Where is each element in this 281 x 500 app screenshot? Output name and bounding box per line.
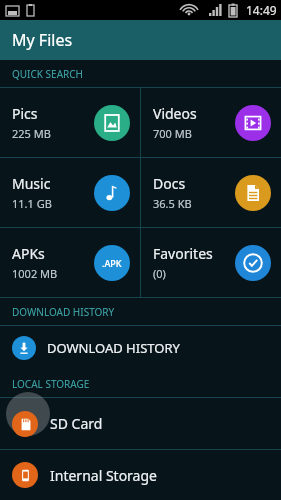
button[interactable]: Internal Storage	[0, 450, 281, 500]
staticText: SD Card	[50, 414, 103, 433]
staticText: LOCAL STORAGE	[12, 377, 90, 391]
staticText: 700 MB	[153, 126, 192, 141]
staticText: DOWNLOAD HISTORY	[12, 305, 115, 319]
staticText: My Files	[12, 29, 73, 51]
staticText: Internal Storage	[50, 466, 157, 485]
button[interactable]: Docs	[141, 158, 281, 227]
staticText: 225 MB	[12, 126, 51, 141]
button[interactable]: Music	[0, 158, 140, 227]
staticText: Docs	[153, 174, 186, 193]
button[interactable]: Videos	[141, 88, 281, 157]
staticText: APKs	[12, 244, 45, 263]
staticText: (0)	[153, 266, 166, 281]
staticText: .APK	[102, 257, 122, 269]
button[interactable]: APKs	[0, 228, 140, 297]
staticText: Music	[12, 174, 51, 193]
staticText: 14:49	[246, 2, 277, 18]
staticText: Favorites	[153, 244, 213, 263]
button[interactable]: SD Card	[0, 398, 281, 449]
staticText: Videos	[153, 104, 197, 123]
staticText: QUICK SEARCH	[12, 67, 84, 81]
button[interactable]: DOWNLOAD HISTORY	[0, 326, 281, 370]
staticText: DOWNLOAD HISTORY	[47, 339, 180, 357]
button[interactable]: My Files	[0, 20, 281, 60]
staticText: Pics	[12, 104, 38, 123]
button[interactable]: Favorites	[141, 228, 281, 297]
staticText: 36.5 KB	[153, 196, 192, 211]
staticText: 1002 MB	[12, 266, 58, 281]
staticText: 11.1 GB	[12, 196, 52, 211]
button[interactable]: Pics	[0, 88, 140, 157]
